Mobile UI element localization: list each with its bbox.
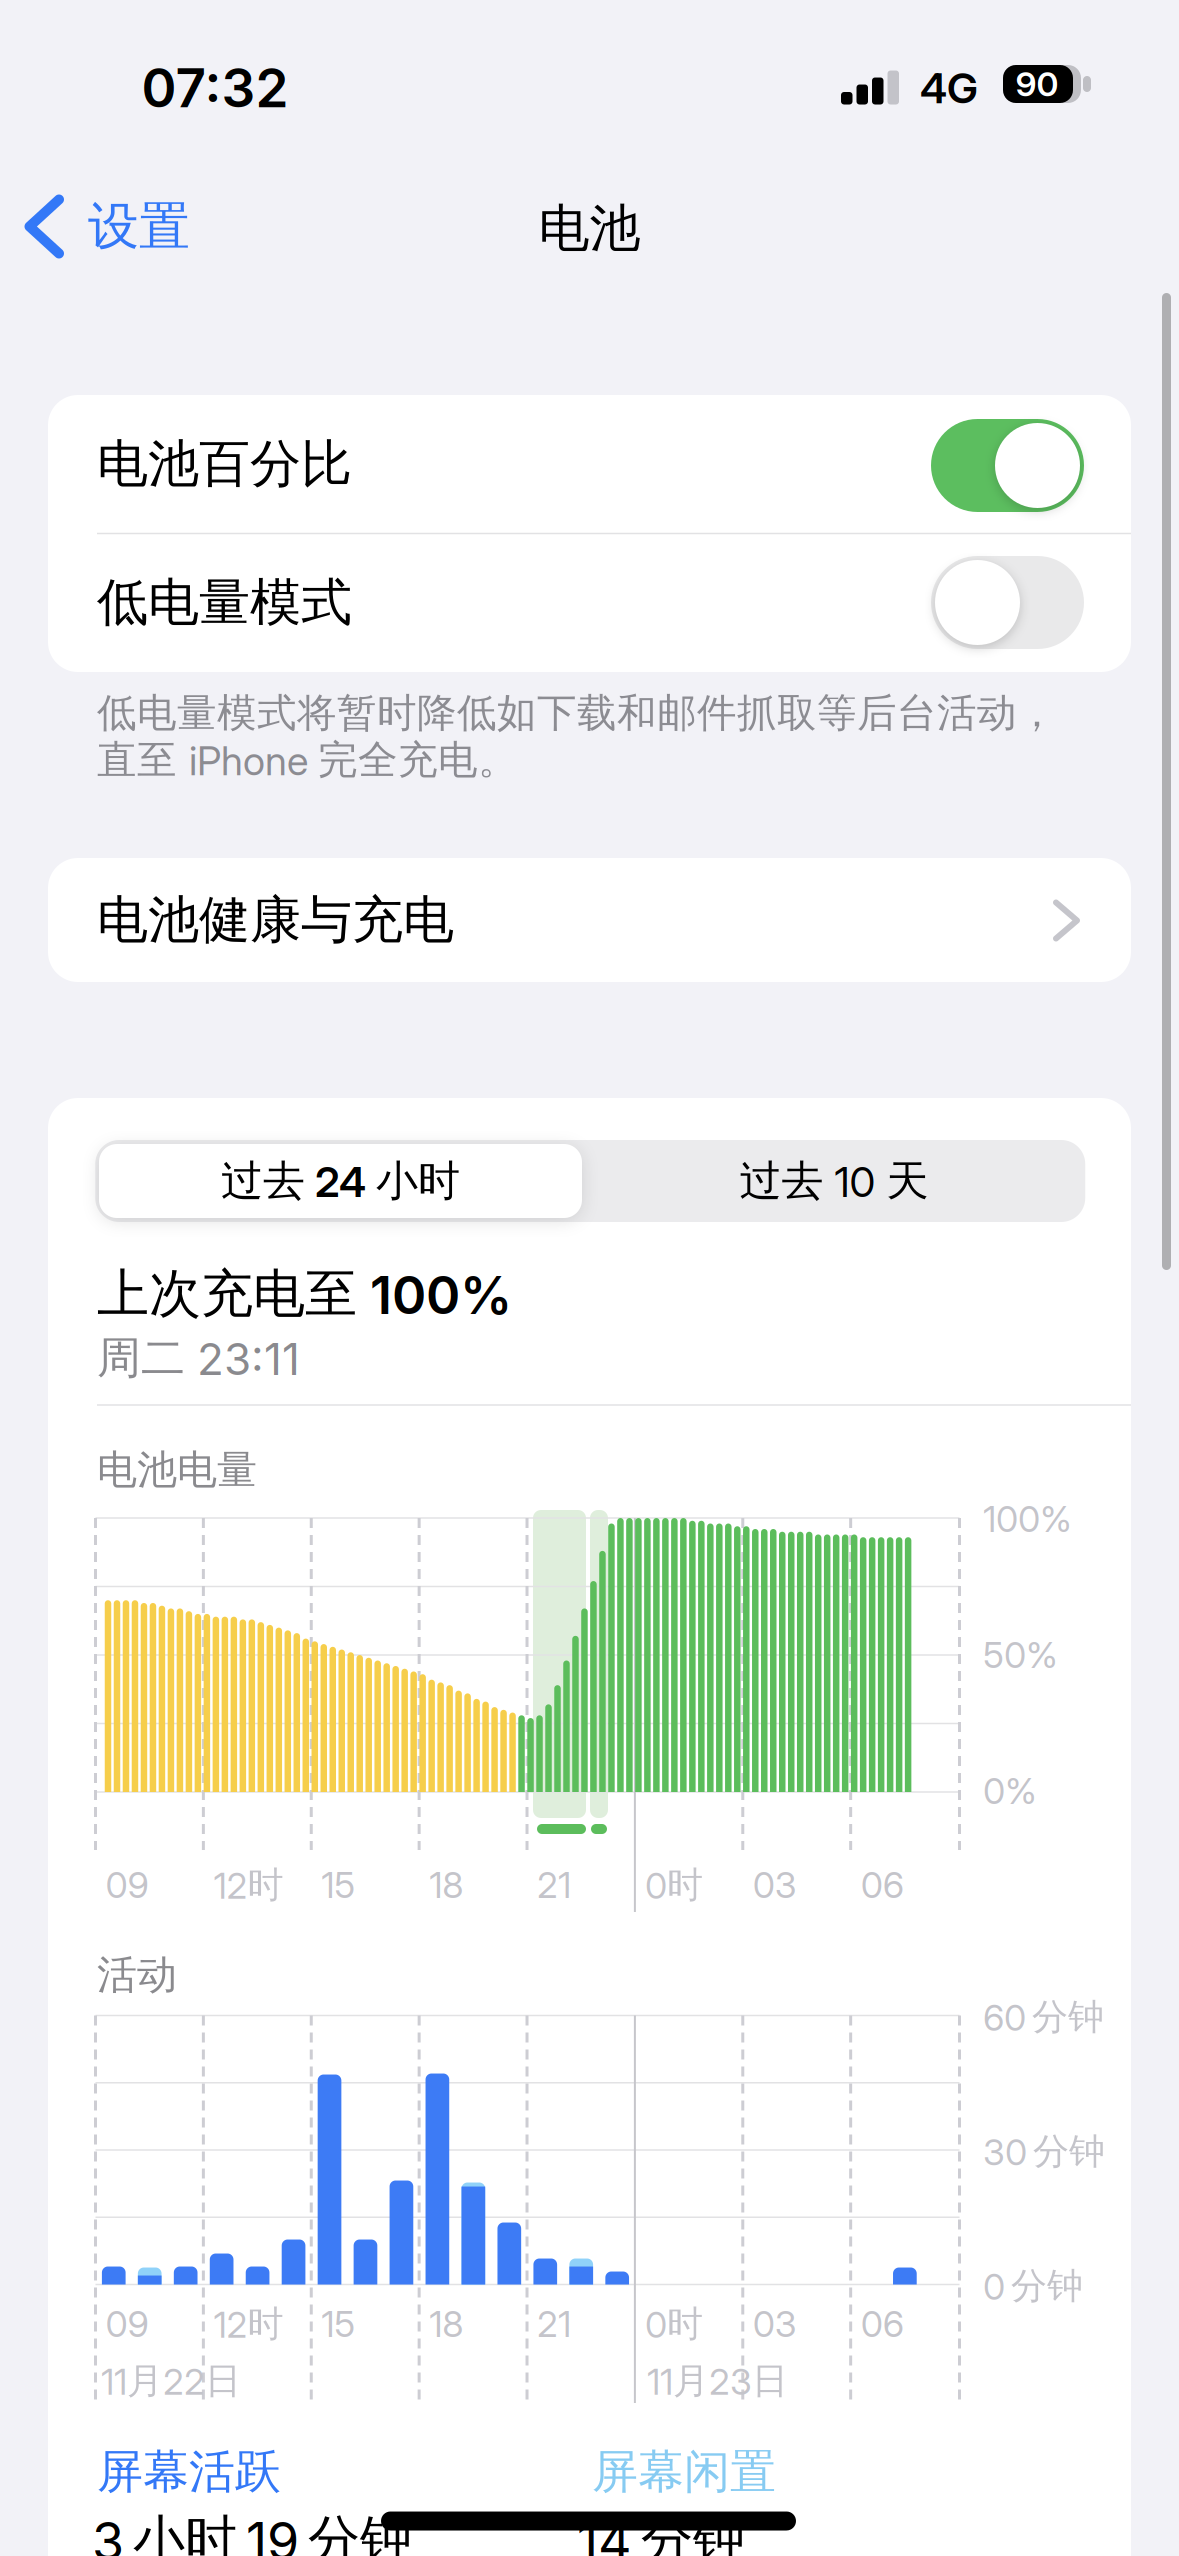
staticText: 3 小时 19 分钟 — [92, 2507, 412, 2556]
staticText: 电池电量 — [97, 1445, 257, 1495]
staticText: 0时 — [645, 2301, 703, 2347]
staticText: 90 — [1015, 63, 1058, 104]
staticText: 周二 23:11 — [97, 1330, 300, 1386]
staticText: 电池百分比 — [97, 432, 352, 496]
staticText: 50% — [983, 1633, 1058, 1677]
staticText: 直至 iPhone 完全充电。 — [97, 735, 518, 785]
staticText: 30 分钟 — [983, 2129, 1105, 2174]
staticText: 09 — [105, 2302, 148, 2346]
staticText: 21 — [537, 2302, 571, 2346]
staticText: 上次充电至 100% — [97, 1261, 512, 1327]
staticText: 15 — [321, 1863, 355, 1907]
staticText: 18 — [429, 1863, 463, 1907]
staticText: 100% — [983, 1497, 1072, 1541]
staticText: 屏幕闲置 — [592, 2443, 776, 2501]
staticText: 电池健康与充电 — [97, 888, 454, 952]
staticText: 15 — [321, 2302, 355, 2346]
button[interactable]: 低电量模式 — [931, 556, 1084, 649]
staticText: 屏幕活跃 — [97, 2443, 281, 2501]
button[interactable]: 设置 — [20, 198, 220, 259]
staticText: 0% — [983, 1769, 1037, 1813]
staticText: 06 — [861, 1863, 904, 1907]
button[interactable]: 电池健康与充电 — [48, 858, 1131, 982]
staticText: 06 — [861, 2302, 904, 2346]
staticText: 低电量模式将暂时降低如下载和邮件抓取等后台活动， — [97, 688, 1057, 738]
staticText: 12时 — [213, 1862, 283, 1908]
staticText: 过去 24 小时 — [221, 1154, 460, 1207]
button[interactable]: 电池百分比 — [931, 419, 1084, 512]
staticText: 活动 — [97, 1950, 177, 2000]
staticText: 18 — [429, 2302, 463, 2346]
staticText: 12时 — [213, 2301, 283, 2347]
staticText: 11月22日 — [101, 2358, 241, 2404]
staticText: 60 分钟 — [983, 1994, 1104, 2040]
staticText: 21 — [537, 1863, 571, 1907]
staticText: 0时 — [645, 1862, 703, 1908]
staticText: 过去 10 天 — [739, 1154, 928, 1207]
staticText: 0 分钟 — [983, 2263, 1083, 2309]
staticText: 4G — [920, 63, 978, 113]
staticText: 11月23日 — [647, 2358, 788, 2404]
button[interactable]: 过去 10 天 — [586, 1140, 1081, 1222]
staticText: 14 分钟 — [577, 2507, 745, 2556]
staticText: 电池 — [538, 196, 640, 261]
button[interactable]: 过去 24 小时 — [99, 1144, 582, 1218]
staticText: 设置 — [88, 194, 190, 259]
staticText: 03 — [753, 2302, 797, 2346]
staticText: 低电量模式 — [97, 570, 352, 635]
staticText: 09 — [105, 1863, 148, 1907]
staticText: 03 — [753, 1863, 797, 1907]
staticText: 07:32 — [141, 56, 288, 120]
